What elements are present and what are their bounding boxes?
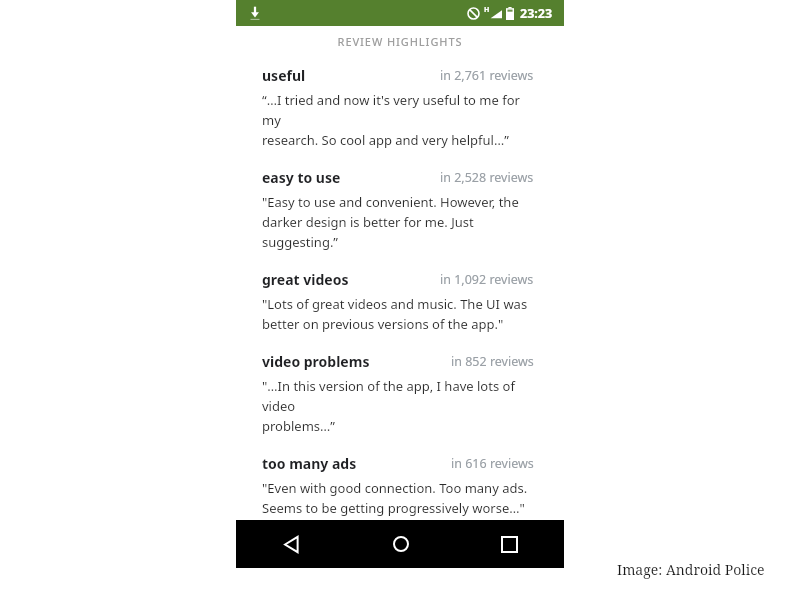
staticText: in 1,092 reviews: [440, 271, 534, 288]
staticText: REVIEW HIGHLIGHTS: [236, 34, 564, 49]
staticText: 23:23: [520, 5, 553, 22]
staticText: video problems: [262, 352, 370, 371]
staticText: in 616 reviews: [451, 455, 534, 472]
staticText: too many ads: [262, 454, 357, 473]
staticText: in 2,528 reviews: [440, 169, 534, 186]
staticText: H: [484, 5, 490, 15]
staticText: “…I tried and now it's very useful to me…: [262, 91, 534, 129]
button[interactable]: Back: [236, 520, 346, 568]
button[interactable]: easy to use: [236, 168, 564, 251]
button[interactable]: video problems: [236, 352, 564, 435]
button[interactable]: useful: [236, 66, 564, 149]
staticText: "Lots of great videos and music. The UI …: [262, 295, 528, 313]
button[interactable]: Home: [346, 520, 455, 568]
staticText: problems…”: [262, 417, 335, 435]
staticText: easy to use: [262, 168, 341, 187]
staticText: darker design is better for me. Just sug…: [262, 213, 534, 251]
staticText: in 852 reviews: [451, 353, 534, 370]
button[interactable]: too many ads: [236, 454, 564, 517]
staticText: better on previous versions of the app.": [262, 315, 504, 333]
staticText: "Easy to use and convenient. However, th…: [262, 193, 519, 211]
staticText: "Even with good connection. Too many ads…: [262, 479, 528, 497]
button[interactable]: great videos: [236, 270, 564, 333]
other: Do not disturb: [467, 7, 480, 20]
staticText: "…In this version of the app, I have lot…: [262, 377, 534, 415]
staticText: Image: Android Police: [617, 560, 765, 579]
staticText: great videos: [262, 270, 349, 289]
staticText: research. So cool app and very helpful…”: [262, 131, 509, 149]
button[interactable]: Recent apps: [455, 520, 564, 568]
staticText: in 2,761 reviews: [440, 67, 534, 84]
staticText: useful: [262, 66, 306, 85]
staticText: Seems to be getting progressively worse……: [262, 499, 525, 517]
